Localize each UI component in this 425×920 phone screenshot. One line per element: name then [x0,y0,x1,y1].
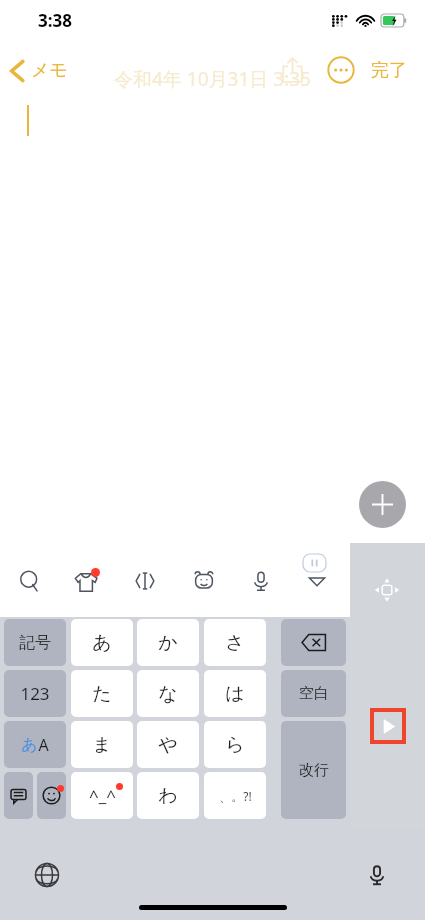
staticText: や [158,733,178,757]
button[interactable]: 空白 [281,670,346,717]
staticText: A [38,734,49,756]
staticText: 123 [20,682,50,705]
button[interactable]: あ [4,721,66,768]
button[interactable]: さ [204,619,266,666]
staticText: 令和4年 10月31日 3:35 [114,66,311,92]
button[interactable]: Cursor [128,564,162,598]
staticText: ^_^ [89,784,116,807]
button[interactable]: Keyboard settings [4,772,33,819]
button[interactable]: 完了 [365,53,413,88]
button[interactable]: Predictive bar [303,554,326,572]
button[interactable]: Emoji [187,564,221,598]
button[interactable]: 改行 [281,721,346,819]
button[interactable]: Move keyboard [374,577,400,603]
button[interactable]: More options [321,50,361,90]
button[interactable]: ^_^ [71,772,133,819]
button[interactable]: Hide keyboard [300,564,334,598]
staticText: わ [158,784,178,808]
button[interactable]: Search [13,564,47,598]
button[interactable]: Delete [281,619,346,666]
button[interactable]: Emoji [37,772,66,819]
button[interactable]: 、。?! [204,772,266,819]
button[interactable]: Change language [27,855,67,895]
staticText: 空白 [299,684,329,703]
button[interactable]: ら [204,721,266,768]
button[interactable]: 記号 [4,619,66,666]
button[interactable]: た [71,670,133,717]
staticText: 改行 [299,761,329,780]
button[interactable]: 123 [4,670,66,717]
button[interactable]: Add [359,481,406,528]
staticText: 完了 [371,59,407,82]
staticText: 、。?! [219,788,252,804]
button[interactable]: わ [137,772,199,819]
button[interactable]: Share [271,49,313,91]
button[interactable]: な [137,670,199,717]
staticText: た [92,682,112,706]
staticText: は [225,682,245,706]
staticText: あ [92,631,112,655]
button[interactable]: Play [370,708,406,744]
button[interactable]: Dictation [357,855,397,895]
staticText: 記号 [19,633,51,653]
staticText: 3:38 [38,9,72,32]
staticText: ら [225,733,245,757]
staticText: さ [225,631,245,655]
staticText: か [158,631,178,655]
button[interactable]: あ [71,619,133,666]
staticText: ま [92,733,112,757]
button[interactable]: Stickers [68,564,102,598]
button[interactable]: ま [71,721,133,768]
button[interactable]: か [137,619,199,666]
staticText: メモ [31,59,68,82]
button[interactable]: メモ [0,55,78,86]
staticText: な [158,682,178,706]
button[interactable]: は [204,670,266,717]
button[interactable]: Voice input [244,564,278,598]
staticText: あ [21,735,38,755]
button[interactable]: や [137,721,199,768]
